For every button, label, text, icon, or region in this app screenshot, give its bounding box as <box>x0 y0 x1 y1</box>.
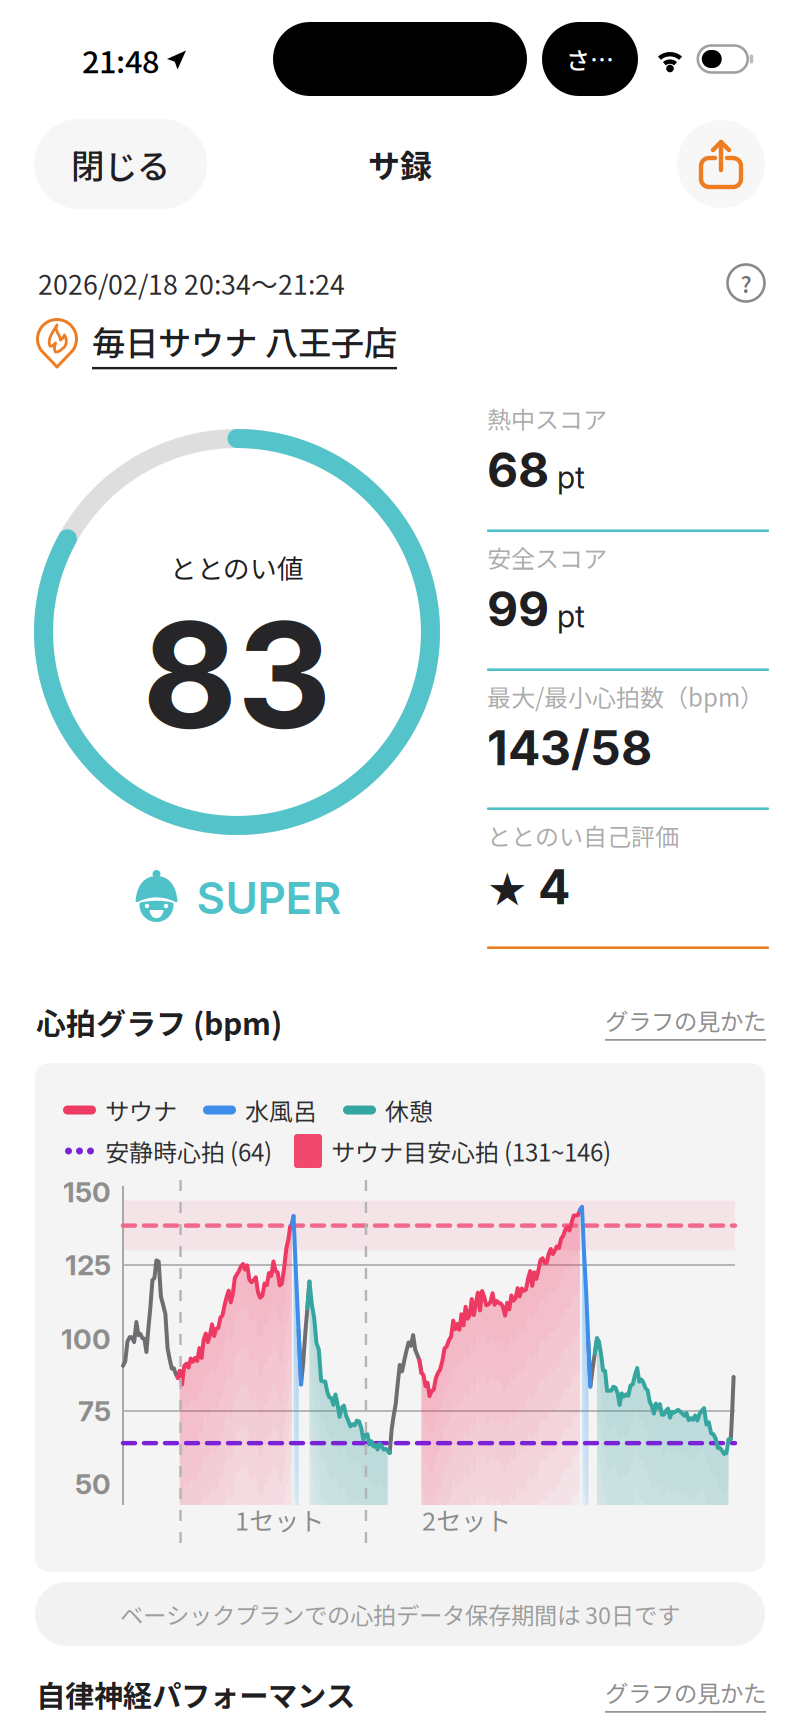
staticText: 安静時心拍 (64) <box>105 1134 272 1168</box>
staticText: 99 <box>487 580 549 638</box>
staticText: 閉じる <box>71 140 170 188</box>
staticText: ★ <box>487 863 528 916</box>
staticText: 75 <box>78 1394 111 1428</box>
button[interactable]: グラフの見かた <box>605 1003 766 1041</box>
staticText: 4 <box>538 858 570 916</box>
staticText: 21:48 <box>82 38 159 82</box>
button[interactable]: 毎日サウナ 八王子店 <box>34 316 634 370</box>
staticText: 毎日サウナ 八王子店 <box>92 317 397 365</box>
staticText: 68 <box>487 441 549 499</box>
staticText: サウナ目安心拍 (131~146) <box>331 1134 611 1168</box>
staticText: 熱中スコア <box>487 401 607 436</box>
staticText: 125 <box>65 1248 111 1282</box>
staticText: 83 <box>142 586 332 764</box>
staticText: ととのい値 <box>170 548 304 586</box>
staticText: グラフの見かた <box>605 1003 766 1037</box>
staticText: 安全スコア <box>487 540 607 575</box>
staticText: ととのい自己評価 <box>487 818 679 853</box>
staticText: 1セット <box>235 1501 324 1538</box>
staticText: 心拍グラフ (bpm) <box>36 1000 282 1044</box>
staticText: ? <box>740 267 751 299</box>
staticText: ベーシックプランでの心拍データ保存期間は 30日です <box>120 1597 680 1631</box>
staticText: さ… <box>566 42 614 76</box>
staticText: pt <box>557 598 585 635</box>
staticText: 最大/最小心拍数（bpm） <box>487 679 764 714</box>
button[interactable]: ヘルプ <box>724 261 768 305</box>
button[interactable]: 共有 <box>677 120 765 208</box>
staticText: グラフの見かた <box>605 1675 766 1709</box>
staticText: pt <box>557 459 585 496</box>
staticText: 2026/02/18 20:34〜21:24 <box>38 264 345 302</box>
staticText: 自律神経パフォーマンス <box>36 1673 355 1715</box>
staticText: 143/58 <box>487 719 652 777</box>
staticText: サ録 <box>368 141 432 187</box>
button[interactable]: 閉じる <box>34 119 207 209</box>
staticText: 100 <box>61 1322 111 1356</box>
staticText: 2セット <box>422 1501 511 1538</box>
staticText: 休憩 <box>385 1093 433 1127</box>
staticText: サウナ <box>105 1093 177 1127</box>
button[interactable]: グラフの見かた <box>605 1675 766 1713</box>
staticText: 水風呂 <box>245 1093 317 1127</box>
staticText: 50 <box>75 1467 111 1501</box>
staticText: 150 <box>63 1175 111 1209</box>
staticText: SUPER <box>196 871 341 925</box>
